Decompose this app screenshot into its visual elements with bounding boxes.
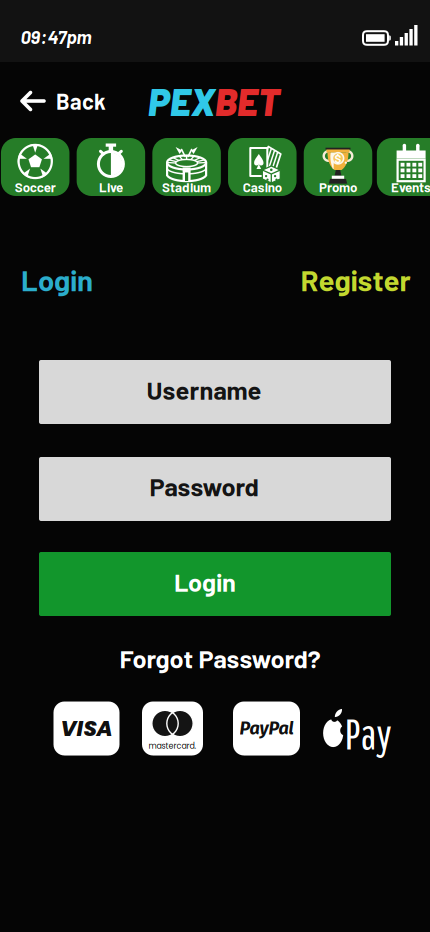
staticText: $ bbox=[334, 151, 341, 165]
staticText: mastercard. bbox=[148, 740, 196, 752]
staticText: Password bbox=[149, 471, 258, 501]
staticText: Promo bbox=[319, 179, 357, 195]
button[interactable]: Pay with Apple Pay bbox=[322, 706, 388, 752]
staticText: Register bbox=[300, 262, 410, 297]
button[interactable]: Live bbox=[77, 138, 145, 196]
staticText: Back bbox=[56, 88, 106, 114]
button[interactable]: Forgot Password? bbox=[119, 643, 320, 673]
staticText: Forgot Password? bbox=[119, 643, 320, 673]
staticText: Live bbox=[99, 179, 123, 195]
button[interactable]: Password bbox=[39, 457, 391, 521]
staticText: BET bbox=[215, 79, 280, 123]
button[interactable]: Pay with Mastercard bbox=[142, 701, 203, 755]
staticText: Events bbox=[391, 179, 430, 195]
button[interactable]: Events bbox=[377, 138, 430, 196]
button[interactable]: Pay with Visa bbox=[53, 701, 119, 755]
staticText: VISA bbox=[60, 714, 112, 743]
staticText: Login bbox=[21, 262, 93, 297]
staticText: PEX bbox=[148, 79, 215, 123]
staticText: Username bbox=[146, 374, 261, 405]
staticText: Login bbox=[174, 566, 236, 597]
button[interactable]: Casino bbox=[228, 138, 297, 196]
button[interactable]: Login bbox=[39, 552, 391, 616]
staticText: Casino bbox=[243, 179, 282, 195]
button[interactable]: Soccer bbox=[1, 138, 69, 196]
staticText: PayPal bbox=[239, 718, 293, 739]
button[interactable]: Login bbox=[21, 262, 93, 297]
button[interactable]: Stadium bbox=[152, 138, 221, 196]
button[interactable]: Username bbox=[39, 360, 391, 424]
staticText: Pay bbox=[344, 708, 391, 758]
button[interactable]: Back bbox=[20, 88, 106, 114]
staticText: Stadium bbox=[162, 179, 211, 195]
button[interactable]: Register bbox=[300, 262, 410, 297]
button[interactable]: Pay with PayPal bbox=[233, 701, 300, 755]
staticText: 09:47pm bbox=[20, 25, 91, 48]
staticText: Soccer bbox=[15, 179, 56, 195]
button[interactable]: $ bbox=[304, 138, 372, 196]
